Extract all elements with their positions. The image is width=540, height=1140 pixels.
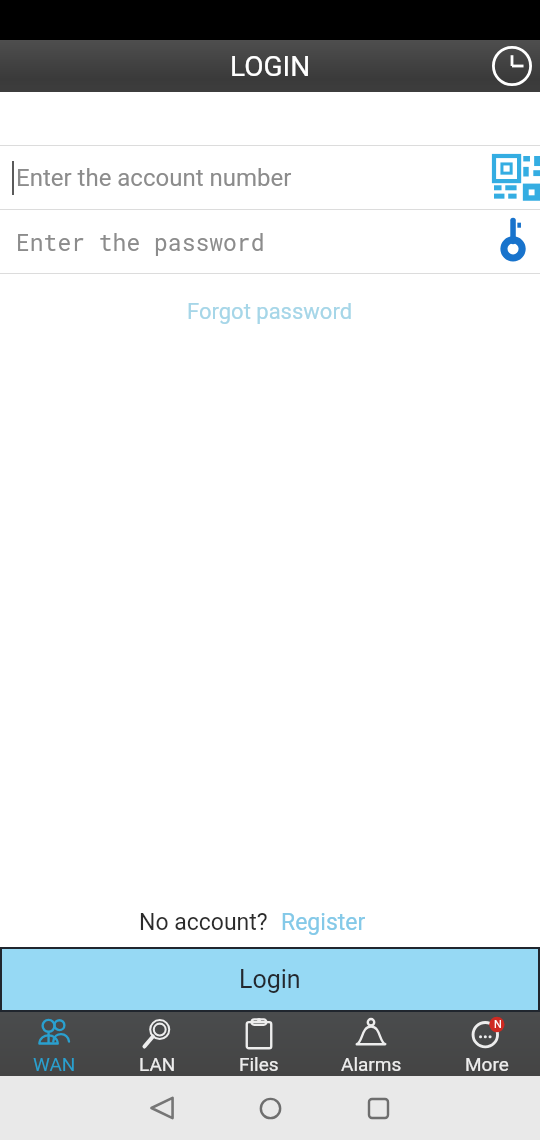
button[interactable]: WAN <box>2 1012 106 1076</box>
button[interactable]: Files <box>207 1012 311 1076</box>
button[interactable]: Back <box>139 1085 185 1131</box>
button[interactable]: Scan QR code <box>484 147 540 209</box>
button[interactable]: Login <box>2 949 538 1010</box>
button[interactable]: N <box>435 1012 539 1076</box>
button[interactable]: History <box>488 42 536 90</box>
staticText: Enter the account number <box>16 164 292 192</box>
staticText: More <box>465 1053 509 1075</box>
button[interactable]: Register <box>281 909 366 936</box>
button[interactable]: Home <box>247 1085 293 1131</box>
staticText: LAN <box>139 1053 176 1075</box>
staticText: LOGIN <box>230 50 311 83</box>
button[interactable]: LAN <box>105 1012 209 1076</box>
staticText: Alarms <box>341 1053 402 1075</box>
button[interactable]: Show password <box>484 211 540 273</box>
staticText: N <box>494 1018 502 1031</box>
staticText: Enter the password <box>16 227 265 257</box>
button[interactable]: Recents <box>355 1085 401 1131</box>
staticText: Login <box>239 965 301 994</box>
button[interactable]: Forgot password <box>173 295 367 329</box>
button[interactable]: Alarms <box>319 1012 423 1076</box>
staticText: WAN <box>33 1053 76 1075</box>
staticText: Files <box>239 1053 279 1075</box>
staticText: No account? <box>139 909 268 936</box>
staticText: Forgot password <box>187 299 353 325</box>
